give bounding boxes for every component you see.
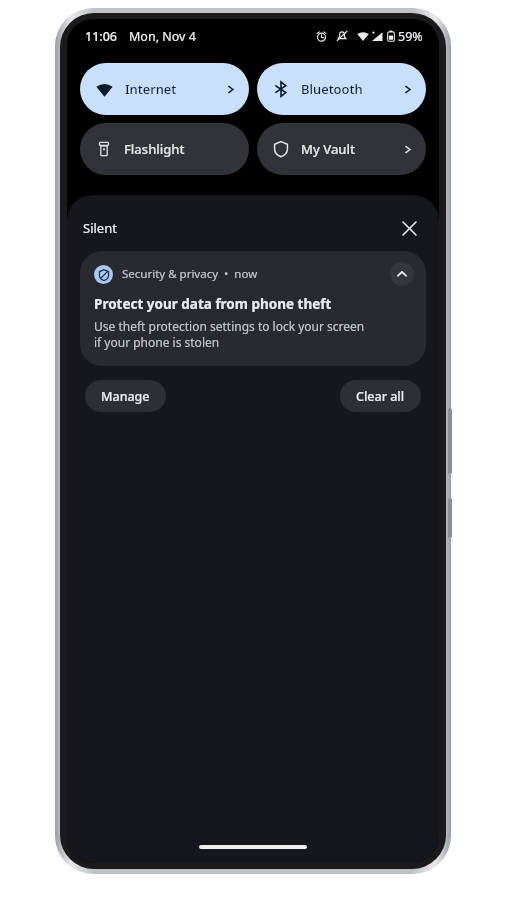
staticText: Bluetooth <box>301 80 363 98</box>
staticText: Clear all <box>356 388 405 405</box>
staticText: Flashlight <box>124 140 185 158</box>
staticText: Use theft protection settings to lock yo… <box>94 318 365 351</box>
staticText: Mon, Nov 4 <box>129 28 196 45</box>
staticText: 11:06 <box>85 28 118 45</box>
staticText: Manage <box>101 388 150 405</box>
button[interactable]: Collapse notification <box>390 262 414 286</box>
staticText: 59% <box>398 28 423 45</box>
staticText: Security & privacy • now <box>122 266 258 282</box>
button[interactable]: Security & privacy • now <box>80 251 426 366</box>
staticText: Internet <box>125 80 177 98</box>
staticText: Silent <box>83 219 117 237</box>
button[interactable]: Bluetooth <box>257 63 426 115</box>
button[interactable]: Manage <box>85 380 166 412</box>
staticText: Protect your data from phone theft <box>94 295 332 313</box>
button[interactable]: Clear all <box>340 380 421 412</box>
button[interactable]: Dismiss silent notifications <box>395 214 423 242</box>
button[interactable]: My Vault <box>257 123 426 175</box>
button[interactable]: Flashlight <box>80 123 249 175</box>
staticText: My Vault <box>301 140 355 158</box>
button[interactable]: Internet <box>80 63 249 115</box>
